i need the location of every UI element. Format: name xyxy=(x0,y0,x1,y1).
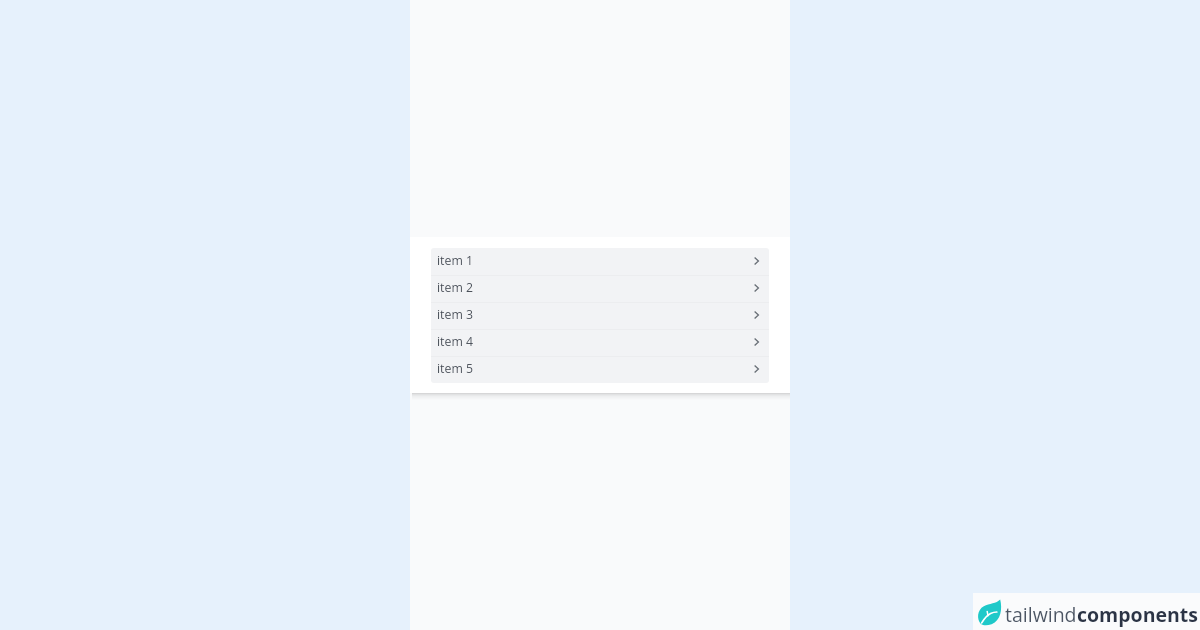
staticText: item 4 xyxy=(437,333,474,350)
other: Open item 2 xyxy=(748,282,760,296)
button[interactable]: item 1 xyxy=(431,248,769,275)
staticText: components xyxy=(1077,601,1198,628)
button[interactable]: item 4 xyxy=(431,329,769,356)
button[interactable]: item 5 xyxy=(431,356,769,383)
button[interactable]: item 2 xyxy=(431,275,769,302)
staticText: item 1 xyxy=(437,252,474,269)
staticText: item 3 xyxy=(437,306,474,323)
other: Open item 5 xyxy=(748,363,760,377)
staticText: tailwind xyxy=(1005,601,1077,628)
button[interactable]: item 3 xyxy=(431,302,769,329)
other: Open item 1 xyxy=(748,255,760,269)
staticText: item 2 xyxy=(437,279,474,296)
other: Open item 3 xyxy=(748,309,760,323)
staticText: item 5 xyxy=(437,360,474,377)
other: Open item 4 xyxy=(748,336,760,350)
button[interactable]: tailwindcomponents xyxy=(973,593,1200,630)
